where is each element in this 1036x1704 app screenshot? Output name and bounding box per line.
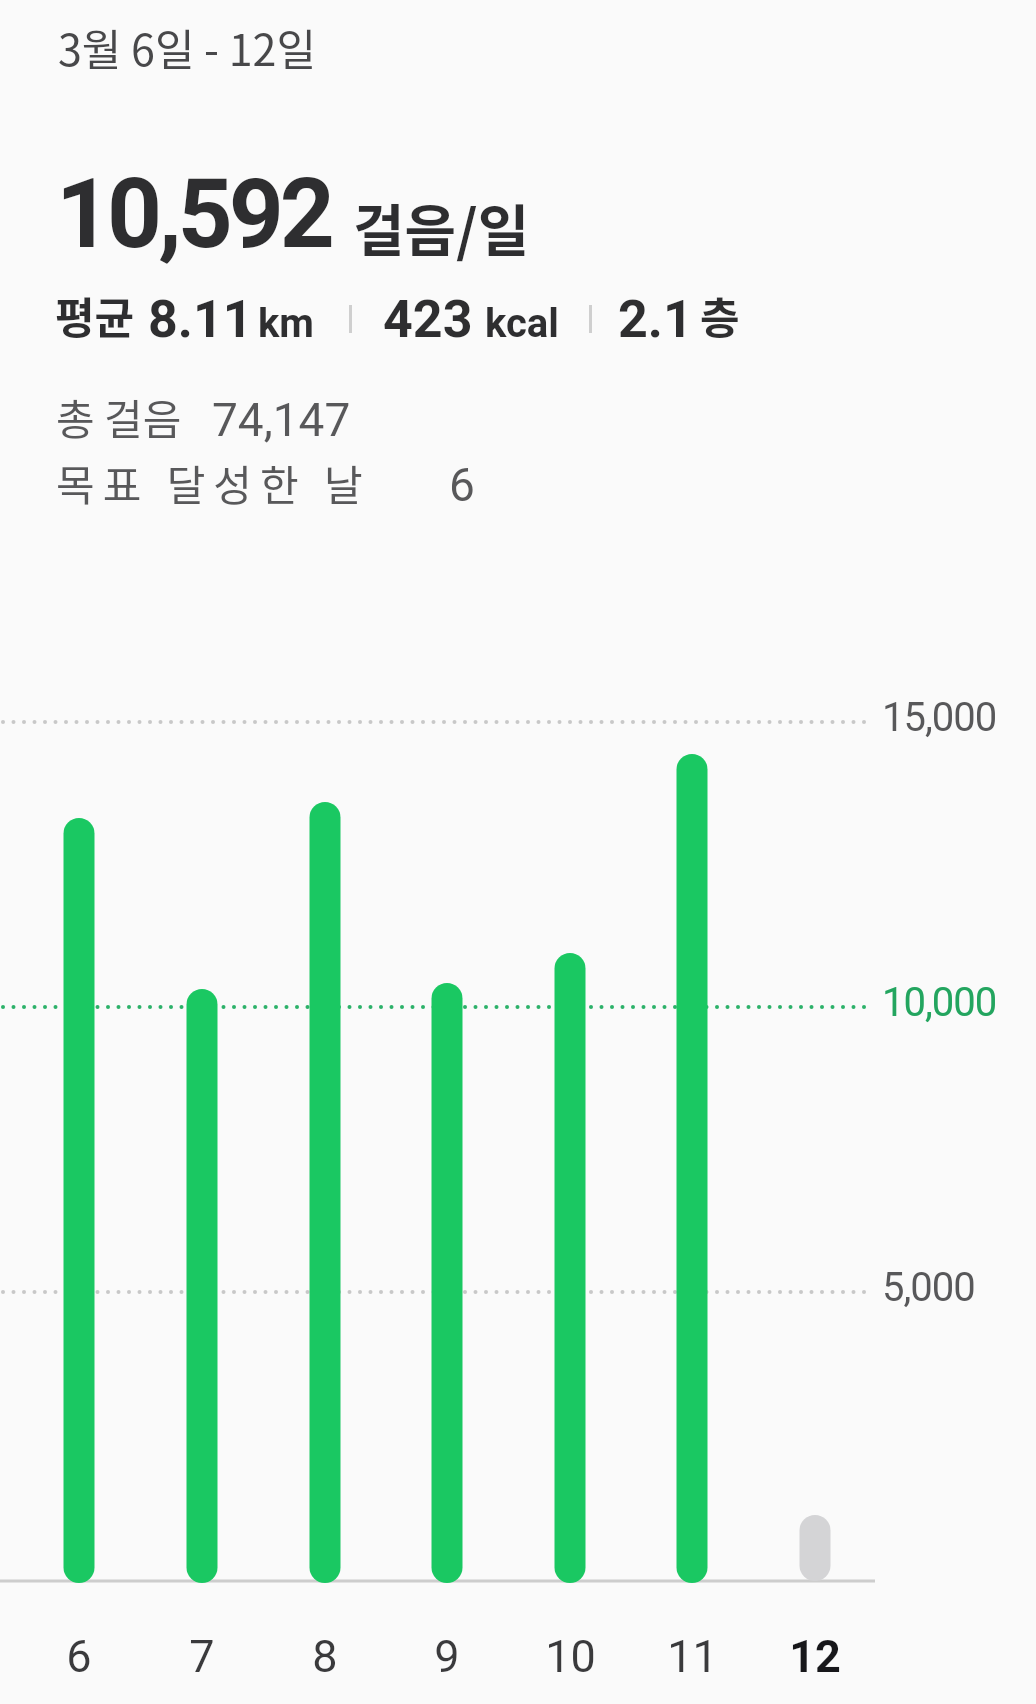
staticText: kcal — [485, 300, 559, 347]
staticText: 층 — [700, 284, 740, 346]
staticText: 12 — [789, 1630, 841, 1683]
staticText: 10,000 — [882, 979, 997, 1026]
staticText: 74,147 — [212, 393, 351, 447]
staticText: km — [258, 300, 314, 347]
staticText: 10 — [545, 1630, 596, 1683]
staticText: 11 — [667, 1630, 718, 1683]
staticText: 평균 — [55, 284, 135, 346]
staticText: 15,000 — [882, 694, 997, 741]
staticText: 8.11 — [148, 289, 253, 350]
staticText: 목표 달성한 날 — [56, 452, 371, 513]
staticText: 2.1 — [618, 289, 693, 350]
staticText: 6 — [449, 458, 475, 512]
staticText: 9 — [434, 1630, 460, 1683]
staticText: 10,592 — [56, 158, 331, 271]
staticText: 총 걸음 — [56, 386, 182, 447]
staticText: 7 — [189, 1630, 215, 1683]
staticText: 6 — [66, 1630, 92, 1683]
staticText: 423 — [383, 289, 473, 350]
staticText: 8 — [312, 1630, 338, 1683]
staticText: 5,000 — [882, 1264, 975, 1311]
staticText: 3월 6일 - 12일 — [58, 16, 316, 78]
staticText: 걸음/일 — [353, 186, 530, 267]
